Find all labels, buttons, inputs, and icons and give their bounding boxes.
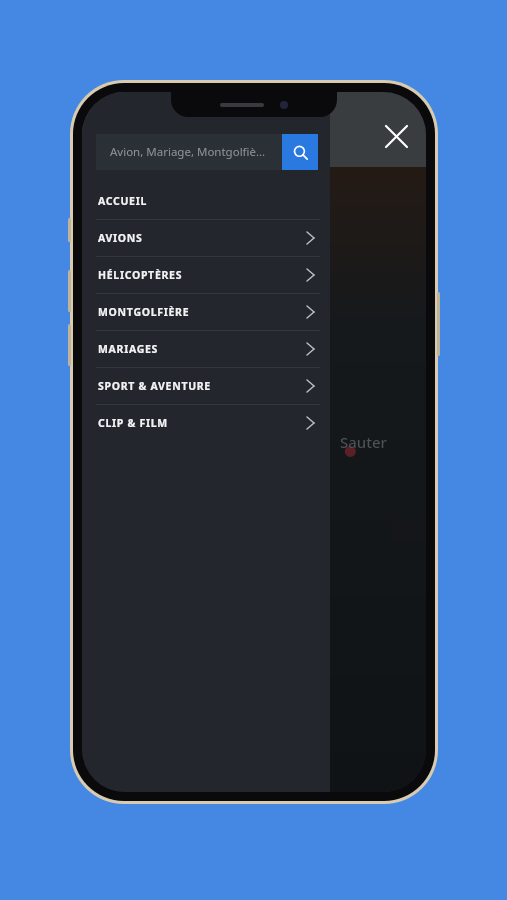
button[interactable]: CLIP & FILM bbox=[82, 404, 330, 441]
staticText: Avion, Mariage, Montgolfière ... bbox=[110, 144, 268, 160]
button[interactable]: AVIONS bbox=[82, 219, 330, 256]
button[interactable]: SPORT & AVENTURE bbox=[82, 367, 330, 404]
button[interactable]: HÉLICOPTÈRES bbox=[82, 256, 330, 293]
staticText: HÉLICOPTÈRES bbox=[98, 268, 183, 282]
button[interactable]: Close menu bbox=[376, 116, 416, 156]
staticText: MARIAGES bbox=[98, 342, 159, 356]
button[interactable]: Avion, Mariage, Montgolfière ... bbox=[96, 134, 282, 170]
button[interactable]: Search bbox=[282, 134, 318, 170]
staticText: SPORT & AVENTURE bbox=[98, 379, 211, 393]
button[interactable]: ACCUEIL bbox=[82, 182, 330, 219]
button[interactable]: MONTGOLFIÈRE bbox=[82, 293, 330, 330]
staticText: Sauter bbox=[340, 432, 387, 452]
staticText: ACCUEIL bbox=[98, 194, 147, 208]
staticText: ES bbox=[144, 120, 177, 155]
staticText: AVIONS bbox=[98, 231, 143, 245]
button[interactable]: Open menu bbox=[100, 126, 130, 150]
button[interactable]: MARIAGES bbox=[82, 330, 330, 367]
staticText: MONTGOLFIÈRE bbox=[98, 305, 190, 319]
staticText: CLIP & FILM bbox=[98, 416, 168, 430]
